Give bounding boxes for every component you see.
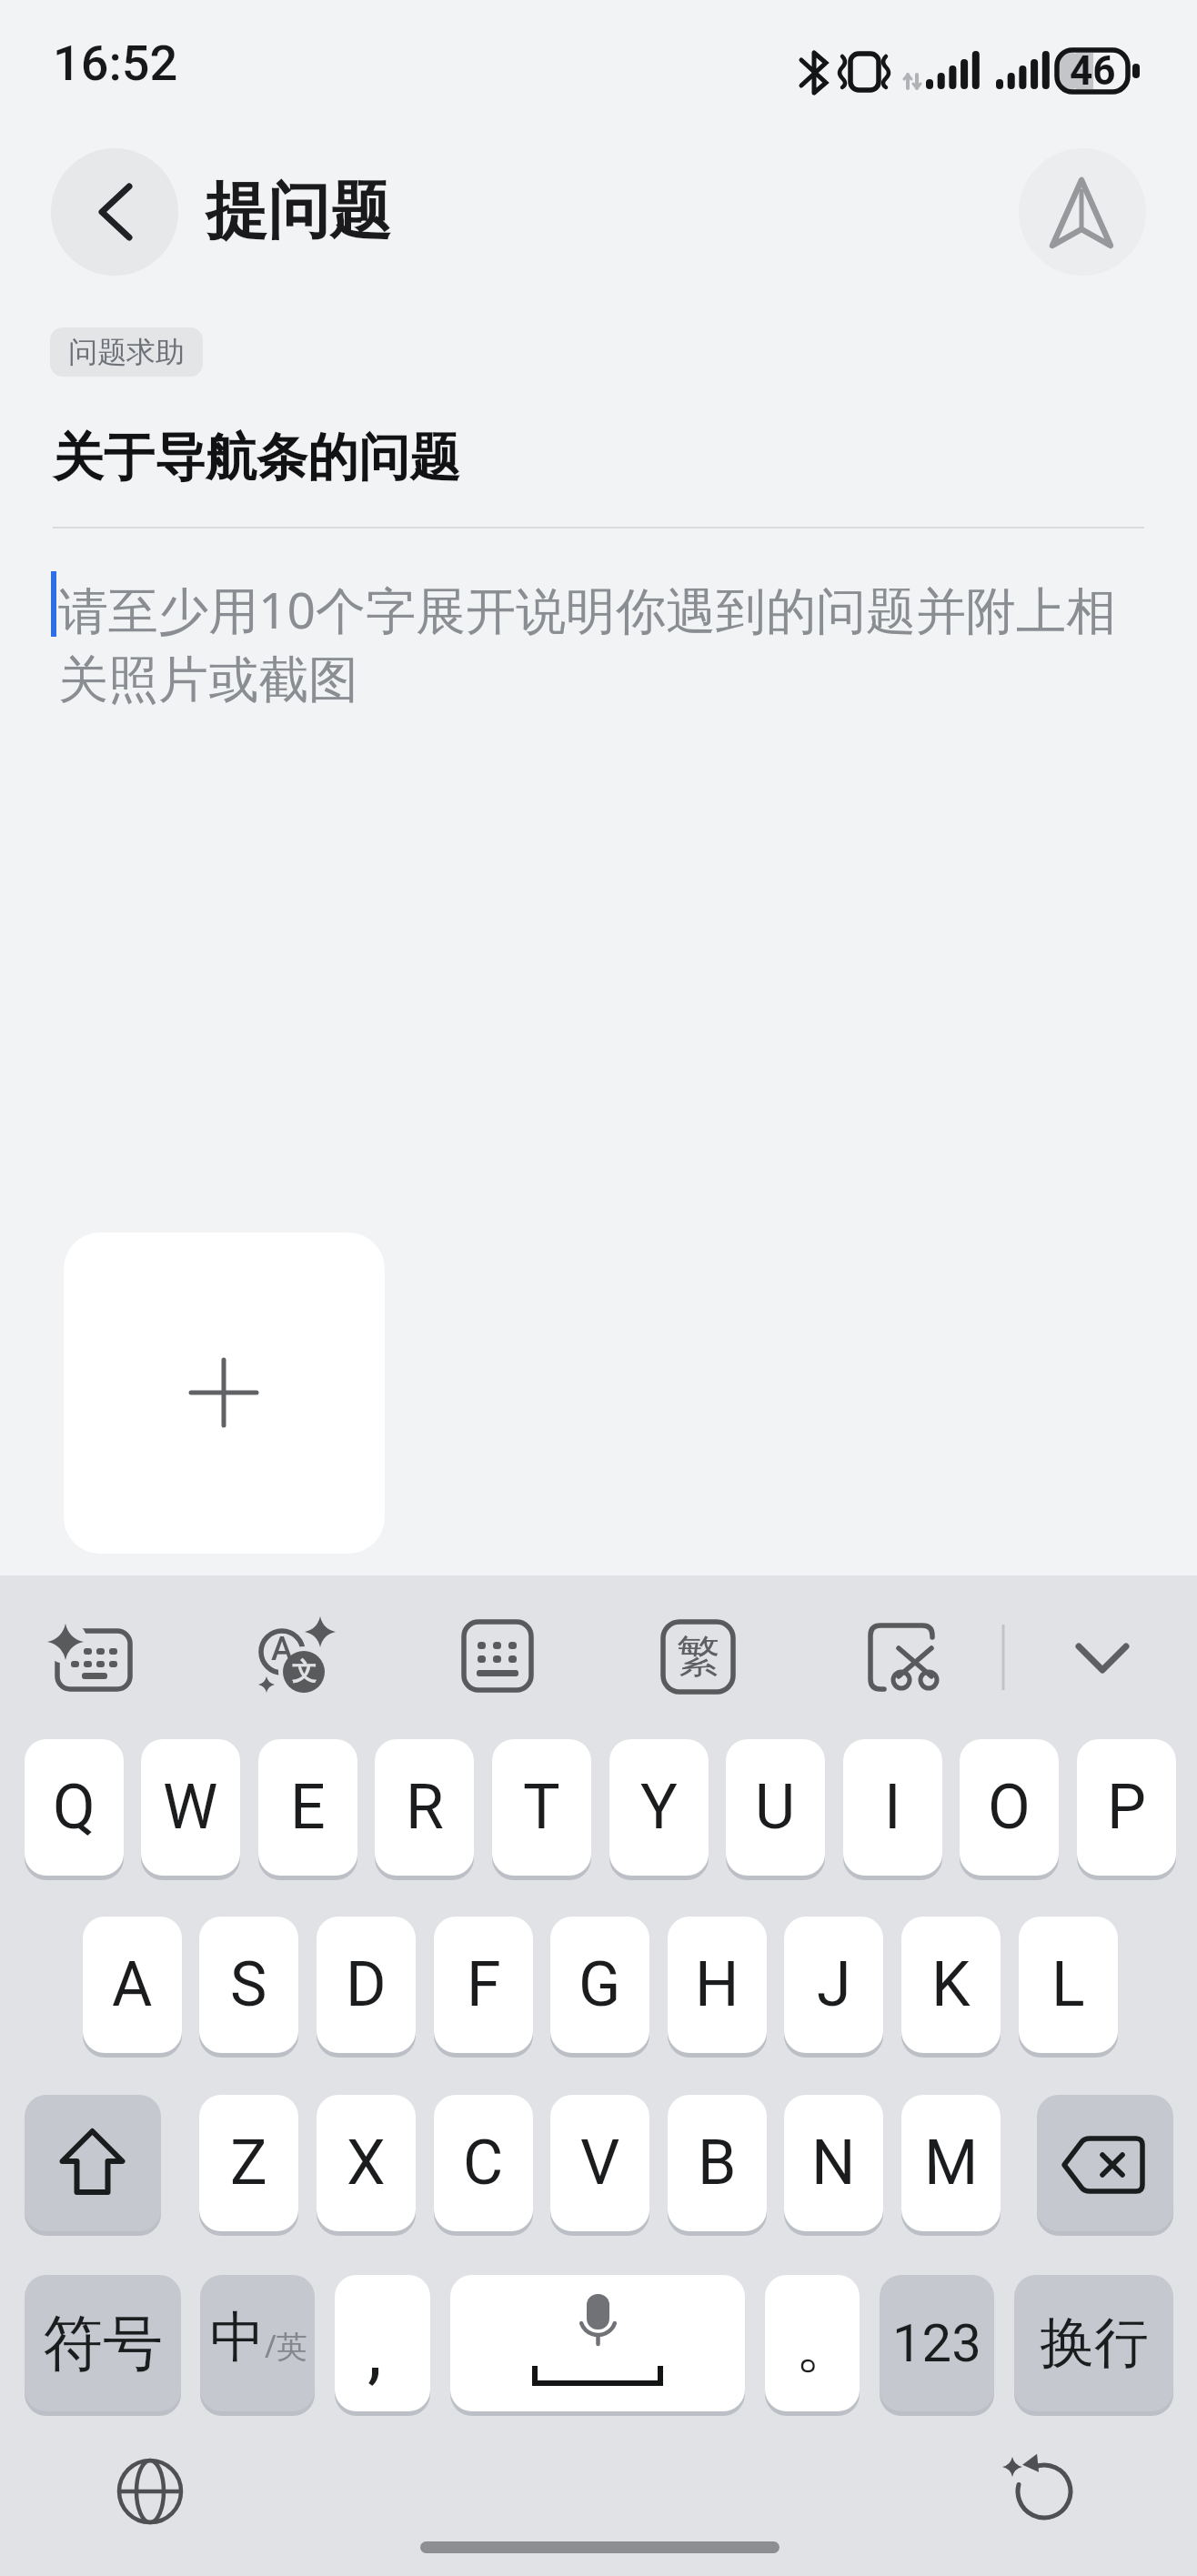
button[interactable]: V xyxy=(550,2095,649,2231)
staticText: P xyxy=(1107,1771,1146,1844)
button[interactable]: Y xyxy=(609,1739,709,1876)
staticText: G xyxy=(578,1948,621,2021)
staticText: V xyxy=(580,2127,620,2199)
staticText: D xyxy=(346,1948,387,2021)
staticText: I xyxy=(884,1771,901,1844)
button[interactable]: M xyxy=(901,2095,1001,2231)
button[interactable]: Z xyxy=(199,2095,298,2231)
staticText: 繁 xyxy=(677,1629,720,1684)
button[interactable] xyxy=(64,1233,385,1554)
button[interactable]: E xyxy=(258,1739,357,1876)
button[interactable]: T xyxy=(492,1739,591,1876)
staticText: 符号 xyxy=(43,2306,163,2381)
button[interactable]: Q xyxy=(25,1739,124,1876)
button[interactable]: S xyxy=(199,1917,298,2053)
staticText: Z xyxy=(230,2127,267,2199)
button[interactable]: 换行 xyxy=(1014,2275,1173,2411)
staticText: S xyxy=(230,1948,267,2021)
button[interactable] xyxy=(335,2275,430,2411)
staticText: 问题求助 xyxy=(68,334,185,370)
button[interactable] xyxy=(765,2275,860,2411)
staticText: M xyxy=(924,2127,979,2199)
button[interactable]: F xyxy=(434,1917,533,2053)
staticText: 16:52 xyxy=(53,35,178,92)
button[interactable]: R xyxy=(375,1739,474,1876)
button[interactable] xyxy=(51,148,178,276)
staticText: A xyxy=(271,1630,293,1668)
staticText: 关于导航条的问题 xyxy=(53,426,460,490)
staticText: /英 xyxy=(265,2325,307,2367)
button[interactable]: X xyxy=(317,2095,416,2231)
staticText: L xyxy=(1051,1948,1085,2021)
button[interactable]: W xyxy=(141,1739,240,1876)
button[interactable]: J xyxy=(784,1917,883,2053)
staticText: 中 xyxy=(210,2303,265,2372)
button[interactable]: O xyxy=(960,1739,1059,1876)
button[interactable] xyxy=(1019,148,1146,276)
button[interactable] xyxy=(200,2275,315,2411)
button[interactable]: 符号 xyxy=(25,2275,181,2411)
staticText: B xyxy=(698,2127,737,2199)
staticText: 关照片或截图 xyxy=(58,649,358,711)
staticText: 文 xyxy=(292,1656,317,1687)
button[interactable]: P xyxy=(1077,1739,1176,1876)
staticText: R xyxy=(406,1771,444,1844)
button[interactable]: A xyxy=(83,1917,182,2053)
staticText: C xyxy=(463,2127,504,2199)
button[interactable]: 123 xyxy=(880,2275,994,2411)
button[interactable] xyxy=(450,2275,745,2411)
staticText: Y xyxy=(640,1771,678,1844)
staticText: 。 xyxy=(795,2307,857,2385)
button[interactable]: D xyxy=(317,1917,416,2053)
staticText: U xyxy=(755,1771,796,1844)
staticText: A xyxy=(112,1948,153,2021)
staticText: O xyxy=(988,1771,1031,1844)
staticText: T xyxy=(523,1771,560,1844)
staticText: Q xyxy=(53,1771,96,1844)
button[interactable]: C xyxy=(434,2095,533,2231)
button[interactable] xyxy=(1037,2095,1173,2231)
button[interactable]: N xyxy=(784,2095,883,2231)
staticText: N xyxy=(811,2127,856,2199)
staticText: , xyxy=(367,2309,382,2394)
button[interactable]: H xyxy=(668,1917,767,2053)
button[interactable]: I xyxy=(843,1739,942,1876)
staticText: X xyxy=(347,2127,386,2199)
button[interactable]: B xyxy=(668,2095,767,2231)
staticText: 换行 xyxy=(1040,2309,1149,2378)
staticText: E xyxy=(290,1771,326,1844)
button[interactable]: 问题求助 xyxy=(50,327,203,377)
staticText: 提问题 xyxy=(206,173,391,251)
staticText: 46 xyxy=(1070,47,1116,95)
button[interactable]: L xyxy=(1019,1917,1118,2053)
staticText: W xyxy=(163,1771,218,1844)
button[interactable]: G xyxy=(550,1917,649,2053)
button[interactable]: K xyxy=(901,1917,1001,2053)
staticText: K xyxy=(931,1948,971,2021)
staticText: J xyxy=(817,1948,851,2021)
button[interactable] xyxy=(25,2095,161,2231)
staticText: 123 xyxy=(892,2312,981,2374)
staticText: H xyxy=(695,1948,739,2021)
staticText: F xyxy=(467,1948,501,2021)
button[interactable]: U xyxy=(726,1739,825,1876)
staticText: 请至少用10个字展开说明你遇到的问题并附上相 xyxy=(58,575,1116,643)
